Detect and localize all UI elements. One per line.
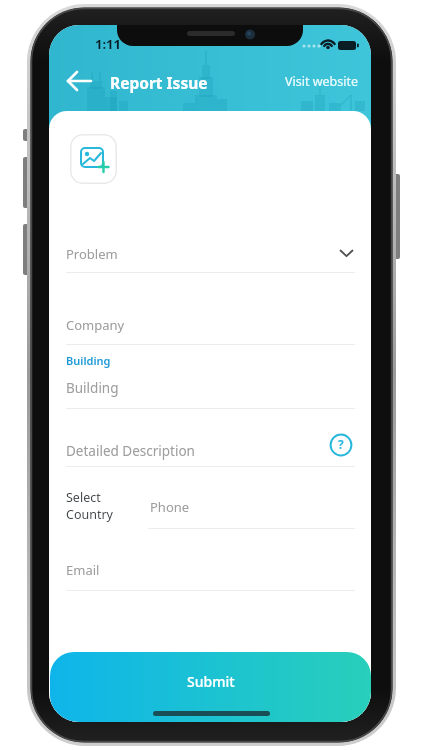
- staticText: Building: [66, 379, 119, 397]
- button[interactable]: [70, 134, 117, 184]
- staticText: Email: [66, 561, 100, 579]
- button[interactable]: Detailed Description: [66, 435, 355, 466]
- button[interactable]: Company: [66, 310, 355, 344]
- button[interactable]: Select Country: [66, 489, 136, 529]
- staticText: Submit: [187, 672, 235, 691]
- button[interactable]: Submit: [50, 652, 371, 722]
- staticText: Detailed Description: [66, 442, 195, 460]
- button[interactable]: ?: [330, 434, 352, 456]
- staticText: 1:11: [95, 35, 121, 53]
- button[interactable]: Problem: [66, 239, 355, 273]
- button[interactable]: [61, 67, 97, 95]
- button[interactable]: Visit website: [277, 69, 367, 94]
- staticText: Select Country: [66, 489, 113, 523]
- staticText: Phone: [150, 498, 190, 516]
- staticText: ?: [338, 436, 344, 452]
- button[interactable]: Building: [66, 373, 355, 407]
- staticText: Problem: [66, 245, 118, 263]
- button[interactable]: Email: [66, 555, 355, 589]
- staticText: Building: [66, 353, 111, 368]
- staticText: Company: [66, 316, 125, 334]
- staticText: Report Issue: [110, 72, 208, 93]
- staticText: Visit website: [285, 73, 359, 90]
- button[interactable]: Phone: [148, 493, 355, 527]
